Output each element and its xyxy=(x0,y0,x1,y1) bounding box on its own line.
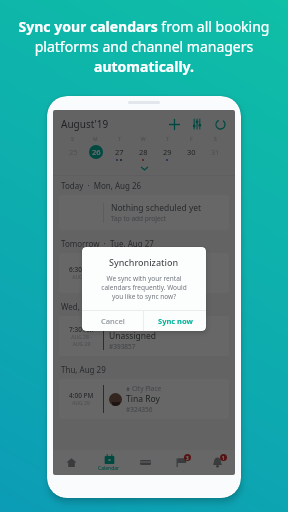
staticText: Sync now xyxy=(158,316,193,326)
staticText: #324356 xyxy=(126,405,153,414)
staticText: Tomorrow · Tue, Aug 27 xyxy=(61,238,154,249)
staticText: 27 xyxy=(115,147,124,157)
staticText: 29 xyxy=(163,147,172,157)
staticText: August'19 xyxy=(61,117,109,131)
staticText: City Place xyxy=(132,384,162,393)
staticText: 3 xyxy=(186,455,189,461)
staticText: 28 xyxy=(139,147,148,157)
staticText: 1 xyxy=(222,455,225,461)
staticText: AUG 28 - AUG 29 xyxy=(71,334,92,348)
staticText: 30 xyxy=(187,147,196,157)
button[interactable]: Cancel xyxy=(82,311,143,331)
staticText: #393857 xyxy=(109,342,136,351)
button[interactable]: 6:30 PM xyxy=(59,253,229,293)
button[interactable]: Home xyxy=(53,450,90,475)
button[interactable]: Payments xyxy=(127,450,163,475)
staticText: T xyxy=(166,136,169,143)
staticText: AUG 29 xyxy=(72,400,90,407)
staticText: 4:00 PM xyxy=(69,391,94,400)
button[interactable]: Add booking xyxy=(167,117,181,131)
button[interactable]: 7:30 AM xyxy=(59,316,229,356)
staticText: #293847 xyxy=(109,279,136,288)
staticText: W xyxy=(141,136,146,143)
staticText: Sync your calendars from all booking pla… xyxy=(11,17,277,76)
button[interactable]: 4:00 PM xyxy=(59,379,229,419)
staticText: Tap to add project xyxy=(111,214,167,223)
staticText: F xyxy=(190,136,193,143)
staticText: 25 xyxy=(69,147,78,157)
staticText: Today · Mon, Aug 26 xyxy=(61,180,142,191)
staticText: S xyxy=(71,136,74,143)
staticText: Unassigned xyxy=(109,330,157,342)
staticText: Cancel xyxy=(101,316,125,326)
button[interactable]: 28 xyxy=(136,145,150,159)
staticText: Pending xyxy=(109,267,143,279)
staticText: Mountain house xyxy=(115,258,165,267)
staticText: Tina Roy xyxy=(126,393,160,405)
button[interactable]: 25 xyxy=(66,145,80,159)
staticText: Wed, Aug 28 xyxy=(61,301,109,312)
staticText: AUG 27 xyxy=(72,274,90,281)
staticText: 26 xyxy=(92,147,101,157)
staticText: Thu, Aug 29 xyxy=(61,364,106,375)
staticText: Beach house xyxy=(115,321,155,330)
staticText: 6:30 PM xyxy=(69,265,94,274)
staticText: M xyxy=(93,136,98,143)
button[interactable]: 31 xyxy=(208,145,222,159)
button[interactable]: Refresh xyxy=(213,117,227,131)
button[interactable]: Filter xyxy=(190,117,204,131)
button[interactable]: Tasks xyxy=(163,450,199,475)
staticText: Synchronization xyxy=(109,256,179,268)
staticText: S xyxy=(214,136,217,143)
button[interactable]: Nothing scheduled yet xyxy=(59,195,229,230)
staticText: Nothing scheduled yet xyxy=(111,202,202,214)
staticText: Calendar xyxy=(98,465,120,472)
button[interactable]: Notifications xyxy=(199,450,235,475)
staticText: 7:30 AM xyxy=(69,325,94,334)
staticText: T xyxy=(118,136,121,143)
button[interactable]: Sync now xyxy=(144,311,206,331)
staticText: We sync with your rental calendars frequ… xyxy=(96,274,192,301)
staticText: 31 xyxy=(211,147,220,157)
button[interactable]: 27 xyxy=(112,145,126,159)
button[interactable]: Calendar xyxy=(90,450,127,475)
button[interactable]: 29 xyxy=(160,145,174,159)
button[interactable]: 30 xyxy=(184,145,198,159)
button[interactable]: Expand calendar xyxy=(61,162,227,175)
button[interactable]: 26 xyxy=(89,145,103,159)
